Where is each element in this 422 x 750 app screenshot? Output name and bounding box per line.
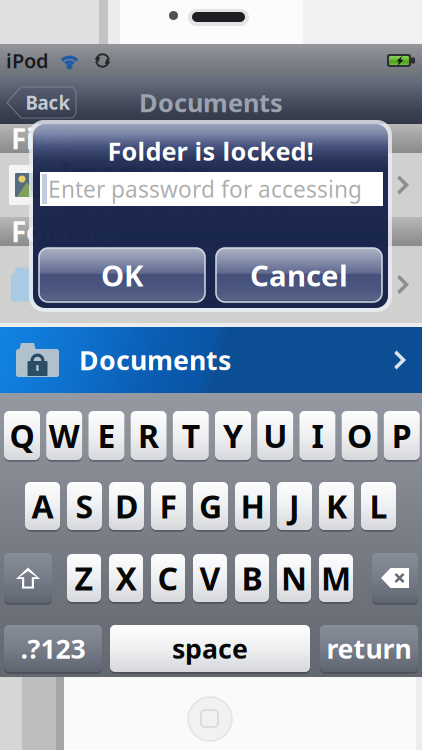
button[interactable]: E	[88, 411, 124, 460]
button[interactable]: A	[25, 482, 60, 530]
staticText: return	[326, 631, 411, 666]
staticText: M	[321, 557, 351, 599]
button[interactable]: B	[235, 554, 269, 602]
button[interactable]: Cancel	[216, 248, 382, 302]
staticText: Folders	[11, 213, 114, 250]
button[interactable]: Y	[215, 411, 251, 460]
staticText: B	[241, 557, 262, 599]
button[interactable]: M	[319, 554, 353, 602]
staticText: iPod	[6, 47, 49, 74]
button[interactable]: Image.jpg	[0, 153, 422, 217]
button[interactable]: O	[342, 411, 378, 460]
staticText: W	[49, 414, 80, 457]
button[interactable]: W	[46, 411, 82, 460]
staticText: Y	[223, 414, 243, 457]
staticText: J	[289, 485, 300, 527]
button[interactable]: T	[173, 411, 209, 460]
staticText: H	[240, 485, 264, 527]
button[interactable]: .?123	[4, 625, 102, 672]
staticText: Back	[25, 90, 70, 115]
button[interactable]: P	[384, 411, 420, 460]
button[interactable]: C	[151, 554, 185, 602]
staticText: D	[115, 485, 138, 527]
staticText: Folder is locked!	[107, 134, 313, 168]
staticText: Files	[11, 120, 73, 157]
staticText: V	[199, 557, 220, 599]
button[interactable]: G	[193, 482, 228, 530]
staticText: OK	[101, 255, 143, 294]
staticText: N	[281, 557, 307, 599]
staticText: C	[157, 557, 178, 599]
button[interactable]: V	[193, 554, 227, 602]
button[interactable]: F	[151, 482, 186, 530]
staticText: G	[199, 485, 222, 527]
button[interactable]: Z	[67, 554, 101, 602]
staticText: F	[159, 485, 177, 527]
staticText: T	[182, 414, 200, 457]
button[interactable]: S	[67, 482, 102, 530]
button[interactable]: I	[299, 411, 335, 460]
staticText: 107.2 KB, 2012-4-24 8:13	[60, 193, 285, 218]
staticText: Q	[9, 414, 34, 457]
button[interactable]: H	[235, 482, 270, 530]
staticText: S	[75, 485, 93, 527]
staticText: Enter password for accessing	[48, 174, 362, 204]
button[interactable]: U	[257, 411, 293, 460]
staticText: Cancel	[250, 255, 348, 294]
button[interactable]: R	[131, 411, 167, 460]
button[interactable]: return	[320, 625, 418, 672]
button[interactable]: Back	[6, 87, 76, 118]
button[interactable]: J	[277, 482, 312, 530]
button[interactable]: Data	[0, 246, 422, 323]
button[interactable]: L	[361, 482, 396, 530]
button[interactable]: Shift	[4, 553, 52, 603]
staticText: P	[392, 414, 412, 457]
staticText: R	[138, 414, 159, 457]
button[interactable]: N	[277, 554, 311, 602]
staticText: K	[326, 485, 347, 527]
staticText: Image.jpg	[60, 152, 210, 191]
staticText: X	[115, 557, 136, 599]
button[interactable]: Q	[4, 411, 40, 460]
staticText: .?123	[20, 631, 85, 666]
staticText: E	[97, 414, 115, 457]
staticText: U	[263, 414, 287, 457]
staticText: Z	[74, 557, 93, 599]
button[interactable]: Delete	[372, 553, 418, 603]
staticText: A	[31, 485, 53, 527]
staticText: Documents	[79, 342, 231, 378]
staticText: Documents	[139, 86, 283, 119]
button[interactable]: Documents	[0, 327, 422, 393]
staticText: space	[172, 631, 248, 666]
button[interactable]: space	[110, 625, 310, 672]
button[interactable]: D	[109, 482, 144, 530]
staticText: O	[347, 414, 372, 457]
staticText: I	[311, 414, 323, 457]
button[interactable]: OK	[39, 248, 205, 302]
button[interactable]: K	[319, 482, 354, 530]
staticText: Data	[66, 263, 141, 306]
staticText: L	[369, 485, 387, 527]
button[interactable]: X	[109, 554, 143, 602]
